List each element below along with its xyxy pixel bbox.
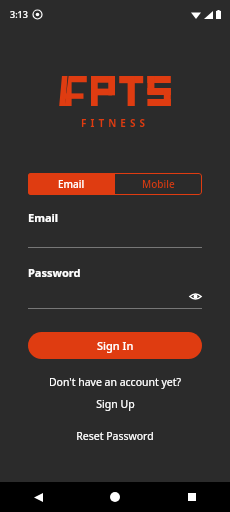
button[interactable]: Mobile <box>115 173 202 195</box>
button[interactable]: Sign Up <box>0 397 230 411</box>
staticText: Email <box>58 177 85 191</box>
staticText: Sign Up <box>96 397 135 411</box>
button[interactable]: Email <box>28 173 115 195</box>
staticText: FITNESS <box>0 116 230 130</box>
button[interactable]: Home <box>76 482 153 512</box>
staticText: Reset Password <box>76 429 154 443</box>
button[interactable]: Reset Password <box>0 429 230 443</box>
button[interactable]: Show password <box>28 288 202 304</box>
button[interactable]: Sign In <box>28 332 202 359</box>
button[interactable]: Recents <box>153 482 230 512</box>
button[interactable]: Show password <box>189 290 202 303</box>
staticText: Mobile <box>142 177 175 191</box>
staticText: Password <box>28 265 81 280</box>
staticText: Don't have an account yet? <box>0 375 230 389</box>
staticText: Email <box>28 210 59 225</box>
staticText: Sign In <box>97 338 134 353</box>
button[interactable]: Back <box>0 482 76 512</box>
staticText: 3:13 <box>10 8 28 20</box>
